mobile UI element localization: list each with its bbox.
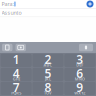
staticText: GHI xyxy=(13,76,20,82)
staticText: WXYZ xyxy=(74,90,85,96)
button[interactable]: 9 xyxy=(64,82,95,95)
staticText: 4 xyxy=(13,65,20,81)
staticText: 6 xyxy=(76,65,83,81)
button[interactable]: 3 xyxy=(64,54,95,67)
button[interactable]: Add contact xyxy=(85,0,94,8)
button[interactable]: 7 xyxy=(1,82,32,95)
button[interactable]: 8 xyxy=(32,82,64,95)
button[interactable]: Camera xyxy=(14,42,27,52)
staticText: ABC xyxy=(43,62,52,68)
staticText: 2 xyxy=(44,51,51,67)
staticText: TUV xyxy=(44,90,52,96)
staticText: Para: xyxy=(1,0,13,8)
staticText: 7 xyxy=(13,79,20,95)
staticText: JKL xyxy=(45,76,51,82)
staticText: 1 xyxy=(13,51,20,67)
staticText: Assunto xyxy=(1,9,21,16)
button[interactable]: 5 xyxy=(32,68,64,81)
button[interactable]: 2 xyxy=(32,54,64,67)
staticText: 5 xyxy=(44,65,51,81)
button[interactable]: Photo library xyxy=(0,42,14,52)
button[interactable]: 4 xyxy=(1,68,32,81)
staticText: DEF xyxy=(76,62,83,68)
button[interactable]: Dictate xyxy=(77,42,94,52)
button[interactable]: 6 xyxy=(64,68,95,81)
staticText: 3 xyxy=(76,51,83,67)
button[interactable]: 1 xyxy=(1,54,32,67)
staticText: 9 xyxy=(76,79,83,95)
staticText: PQRS xyxy=(11,90,21,96)
staticText: MNO xyxy=(75,76,85,82)
staticText: 8 xyxy=(44,79,51,95)
